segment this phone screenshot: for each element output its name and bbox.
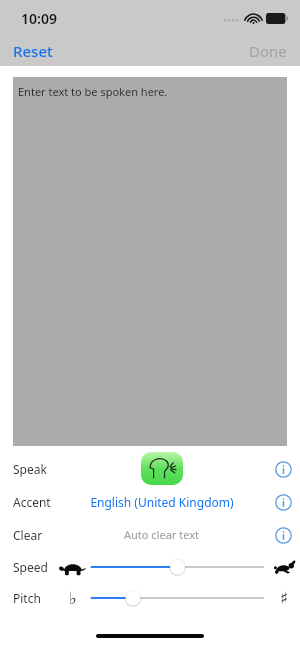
- button[interactable]: [89, 554, 266, 580]
- button[interactable]: English (United Kingdom): [57, 485, 266, 518]
- staticText: Pitch: [13, 590, 41, 606]
- staticText: Accent: [13, 494, 51, 510]
- button[interactable]: Speak: [141, 452, 183, 485]
- button[interactable]: Clear info: [266, 520, 300, 550]
- staticText: Speak: [13, 461, 47, 477]
- button[interactable]: [89, 585, 266, 611]
- staticText: English (United Kingdom): [90, 494, 234, 510]
- button[interactable]: Auto clear text: [57, 518, 266, 551]
- button[interactable]: Done: [239, 37, 300, 65]
- staticText: Reset: [13, 41, 53, 61]
- staticText: Auto clear text: [124, 527, 199, 542]
- staticText: Enter text to be spoken here.: [18, 84, 168, 99]
- staticText: Clear: [13, 527, 43, 543]
- staticText: Done: [249, 41, 287, 61]
- staticText: 10:09: [21, 9, 57, 28]
- button[interactable]: Enter text to be spoken here.: [13, 77, 287, 446]
- button[interactable]: Reset: [0, 37, 63, 65]
- button[interactable]: Speak info: [266, 454, 300, 484]
- staticText: Speed: [13, 559, 48, 575]
- button[interactable]: Accent info: [266, 487, 300, 517]
- staticText: ♭: [69, 588, 78, 608]
- staticText: ♯: [280, 588, 289, 608]
